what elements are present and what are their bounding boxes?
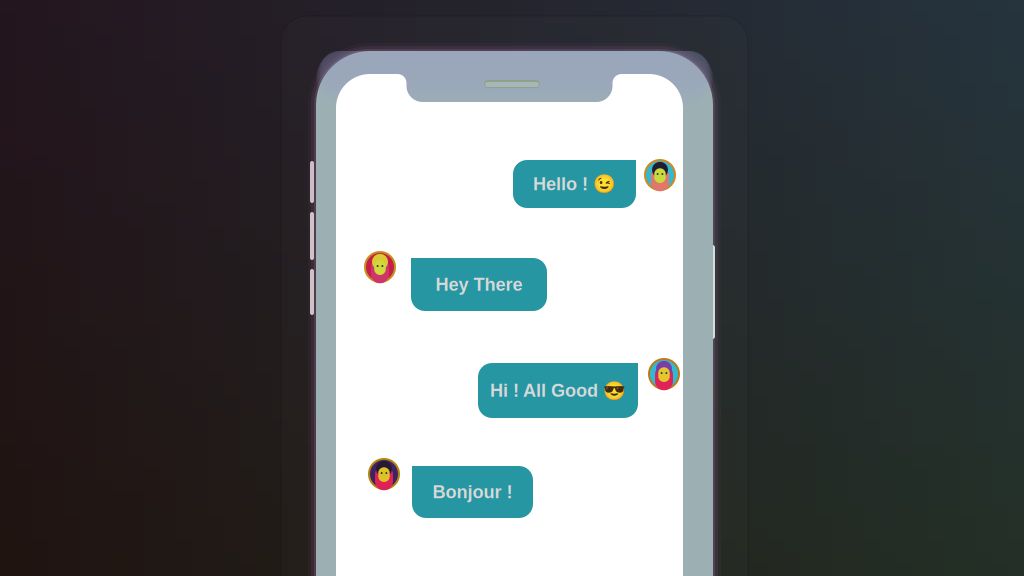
button[interactable]: Hi ! All Good 😎 bbox=[478, 363, 638, 418]
button[interactable]: Hello ! 😉 bbox=[513, 160, 636, 208]
button[interactable]: Hey There bbox=[411, 258, 547, 311]
staticText: Hello ! 😉 bbox=[533, 173, 616, 195]
button[interactable]: Bonjour ! bbox=[412, 466, 533, 518]
staticText: Hi ! All Good 😎 bbox=[490, 380, 626, 401]
staticText: Hey There bbox=[435, 274, 522, 295]
staticText: Bonjour ! bbox=[432, 482, 512, 502]
